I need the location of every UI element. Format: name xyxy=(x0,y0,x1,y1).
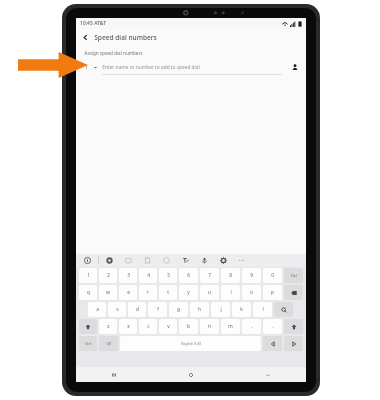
staticText: h xyxy=(198,306,201,313)
button[interactable]: Back xyxy=(229,367,306,382)
button[interactable]: Keyboard tool 1 xyxy=(104,255,115,266)
button[interactable]: Keyboard tool 8 xyxy=(236,255,247,266)
button[interactable]: t xyxy=(159,285,177,300)
button[interactable]: Shift xyxy=(284,319,303,334)
staticText: v xyxy=(167,323,170,330)
button[interactable]: k xyxy=(232,302,251,317)
button[interactable]: Ctrl xyxy=(79,336,97,351)
staticText: c xyxy=(147,323,150,330)
button[interactable]: b xyxy=(179,319,198,334)
staticText: 1 xyxy=(84,63,88,71)
button[interactable]: f xyxy=(148,302,167,317)
staticText: o xyxy=(250,289,253,296)
button[interactable]: 5 xyxy=(159,268,177,283)
button[interactable]: r xyxy=(139,285,157,300)
staticText: w xyxy=(106,289,110,296)
button[interactable]: Keyboard tool 3 xyxy=(142,255,153,266)
staticText: x xyxy=(127,323,130,330)
button[interactable]: l xyxy=(253,302,272,317)
button[interactable]: z xyxy=(99,319,117,334)
button[interactable]: g xyxy=(169,302,188,317)
staticText: s xyxy=(116,306,119,313)
button[interactable]: y xyxy=(179,285,198,300)
button[interactable]: x xyxy=(119,319,137,334)
staticText: 6 xyxy=(187,272,190,279)
button[interactable]: 7 xyxy=(200,268,219,283)
button[interactable]: 6 xyxy=(179,268,198,283)
staticText: q xyxy=(87,289,90,296)
staticText: 7 xyxy=(208,272,211,279)
button[interactable]: Keyboard tool 6 xyxy=(199,255,210,266)
button[interactable]: Search xyxy=(274,302,293,317)
button[interactable]: d xyxy=(128,302,146,317)
button[interactable]: n xyxy=(200,319,219,334)
button[interactable]: v xyxy=(159,319,177,334)
button[interactable]: e xyxy=(119,285,137,300)
button[interactable]: Backspace xyxy=(284,285,303,300)
button[interactable]: i xyxy=(221,285,240,300)
staticText: a xyxy=(96,306,99,313)
button[interactable]: p xyxy=(263,285,282,300)
staticText: m xyxy=(228,323,233,330)
staticText: 5 xyxy=(167,272,170,279)
staticText: l xyxy=(262,306,264,313)
button[interactable]: , xyxy=(242,319,261,334)
button[interactable]: q xyxy=(79,285,97,300)
button[interactable]: Move cursor right xyxy=(284,336,303,351)
button[interactable]: u xyxy=(200,285,219,300)
button[interactable]: Home xyxy=(152,367,229,382)
button[interactable]: Keyboard tool 7 xyxy=(218,255,229,266)
staticText: 3 xyxy=(127,272,130,279)
button[interactable]: Keyboard tool 0 xyxy=(82,255,93,266)
button[interactable]: English (US) xyxy=(120,336,261,351)
button[interactable]: c xyxy=(139,319,157,334)
staticText: k xyxy=(240,306,243,313)
button[interactable]: Keyboard tool 4 xyxy=(161,255,172,266)
button[interactable]: a xyxy=(88,302,106,317)
button[interactable]: 4 xyxy=(139,268,157,283)
button[interactable]: 1 xyxy=(79,268,97,283)
staticText: English (US) xyxy=(181,341,201,346)
button[interactable]: Shift xyxy=(79,319,97,334)
button[interactable]: 2 xyxy=(99,268,117,283)
button[interactable]: 9 xyxy=(242,268,261,283)
button[interactable]: 8 xyxy=(221,268,240,283)
staticText: p xyxy=(271,289,274,296)
button[interactable]: Back xyxy=(76,29,94,46)
staticText: e xyxy=(127,289,130,296)
button[interactable]: w xyxy=(99,285,117,300)
button[interactable]: s xyxy=(108,302,126,317)
staticText: n xyxy=(208,323,211,330)
button[interactable]: Contacts xyxy=(288,60,302,74)
staticText: u xyxy=(208,289,211,296)
button[interactable]: Move cursor left xyxy=(263,336,282,351)
button[interactable]: Recent apps xyxy=(76,367,152,382)
button[interactable]: Del xyxy=(284,268,303,283)
button[interactable]: o xyxy=(242,285,261,300)
button[interactable]: 1 xyxy=(76,59,306,75)
button[interactable]: 0 xyxy=(263,268,282,283)
button[interactable]: j xyxy=(211,302,230,317)
button[interactable]: h xyxy=(190,302,209,317)
staticText: 9 xyxy=(250,272,253,279)
staticText: z xyxy=(107,323,110,330)
button[interactable]: Keyboard tool 2 xyxy=(123,255,134,266)
staticText: 2 xyxy=(107,272,110,279)
staticText: , xyxy=(251,323,253,330)
staticText: 10:45 AT&T xyxy=(80,20,106,27)
button[interactable]: Keyboard tool 5 xyxy=(180,255,191,266)
staticText: r xyxy=(147,289,149,296)
button[interactable]: m xyxy=(221,319,240,334)
staticText: Del xyxy=(291,273,297,278)
staticText: f xyxy=(157,306,159,313)
staticText: Assign speed dial numbers xyxy=(84,50,143,56)
staticText: j xyxy=(220,306,222,313)
button[interactable]: 3 xyxy=(119,268,137,283)
staticText: Enter name or number to add to speed dia… xyxy=(102,64,200,71)
staticText: 4 xyxy=(147,272,150,279)
staticText: Speed dial numbers xyxy=(94,33,157,42)
staticText: 0 xyxy=(271,272,274,279)
button[interactable]: !#1 xyxy=(99,336,118,351)
staticText: t xyxy=(167,289,169,296)
